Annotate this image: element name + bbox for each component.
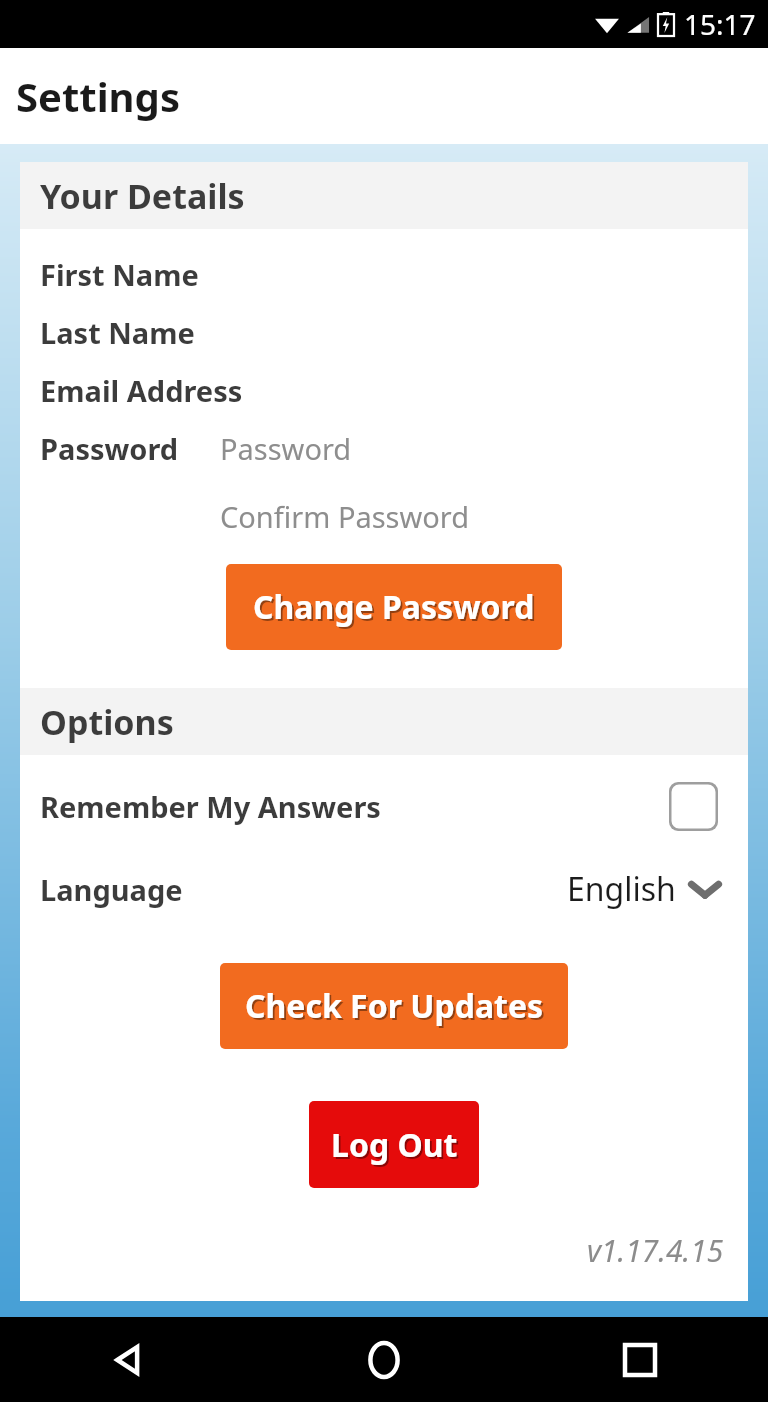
staticText: Email Address [40, 371, 243, 410]
button[interactable]: Log Out [309, 1101, 479, 1188]
button[interactable]: Recent apps [604, 1324, 676, 1396]
button[interactable]: First Name [20, 245, 748, 303]
staticText: First Name [40, 255, 199, 294]
staticText: Password [40, 429, 220, 468]
staticText: Check For Updates [245, 984, 544, 1028]
staticText: English [567, 867, 676, 911]
staticText: Confirm Password [220, 497, 470, 536]
staticText: Language [40, 870, 183, 909]
staticText: Log Out [331, 1123, 458, 1167]
button[interactable]: Back [92, 1324, 164, 1396]
button[interactable]: Change Password [226, 564, 562, 650]
button[interactable]: Last Name [20, 303, 748, 361]
button[interactable]: Email Address [20, 361, 748, 419]
button[interactable]: Check For Updates [220, 963, 568, 1049]
other: Remember My Answers checkbox [669, 782, 718, 831]
staticText: Options [40, 699, 174, 745]
button[interactable]: Language [20, 861, 748, 917]
staticText: Last Name [40, 313, 195, 352]
button[interactable]: Remember My Answers [20, 777, 748, 835]
staticText: Change Password [255, 587, 537, 631]
staticText: Check For Updates [247, 986, 546, 1030]
staticText: Password [220, 429, 352, 468]
staticText: 15:17 [684, 5, 756, 43]
staticText: Remember My Answers [40, 787, 381, 826]
staticText: Your Details [40, 173, 245, 219]
staticText: v1.17.4.15 [587, 1230, 724, 1271]
staticText: Log Out [333, 1125, 460, 1169]
staticText: Change Password [253, 585, 535, 629]
staticText: Settings [16, 69, 180, 123]
button[interactable]: Home [348, 1324, 420, 1396]
